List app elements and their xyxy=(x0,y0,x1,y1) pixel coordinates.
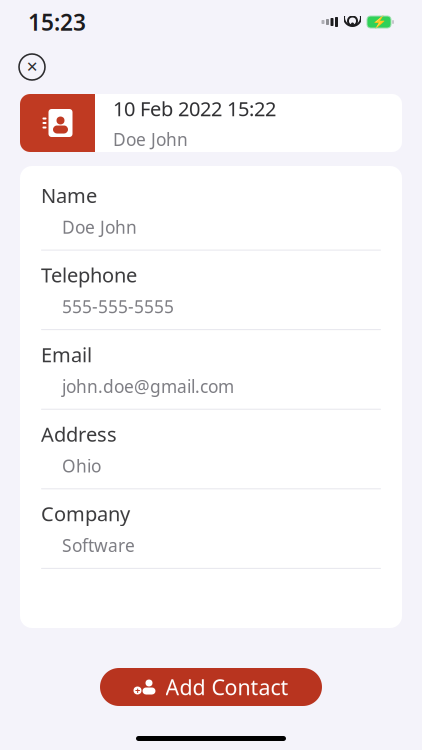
staticText: ✕ xyxy=(26,59,38,75)
staticText: Doe John xyxy=(62,216,137,239)
staticText: Doe John xyxy=(113,128,188,151)
staticText: + xyxy=(135,684,140,697)
staticText: john.doe@gmail.com xyxy=(62,375,234,398)
staticText: Company xyxy=(41,500,130,527)
staticText: Telephone xyxy=(41,262,137,288)
staticText: Email xyxy=(41,341,92,368)
staticText: Software xyxy=(62,534,135,557)
staticText: 10 Feb 2022 15:22 xyxy=(113,95,276,122)
button[interactable]: + xyxy=(100,668,322,706)
staticText: 15:23 xyxy=(28,7,86,37)
button[interactable]: Close xyxy=(15,50,49,84)
staticText: Address xyxy=(41,421,117,447)
staticText: ⚡ xyxy=(371,15,386,29)
staticText: Name xyxy=(41,182,97,209)
staticText: Ohio xyxy=(62,454,101,477)
staticText: Add Contact xyxy=(165,673,288,701)
staticText: 555-555-5555 xyxy=(62,295,174,318)
